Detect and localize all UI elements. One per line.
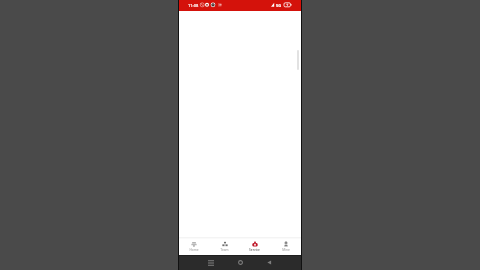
staticText: Mine <box>282 248 290 252</box>
staticText: Team <box>220 248 229 252</box>
staticText: Home <box>189 248 199 252</box>
staticText: 11:08 <box>188 3 199 8</box>
staticText: 5G <box>276 3 282 8</box>
button[interactable]: Team <box>209 238 239 254</box>
button[interactable]: Home <box>179 238 209 254</box>
button[interactable]: Recent apps <box>203 255 219 270</box>
staticText: Service <box>249 248 260 252</box>
button[interactable]: Home <box>232 255 248 270</box>
button[interactable]: Back <box>261 255 277 270</box>
button[interactable]: Service <box>239 238 270 254</box>
button[interactable]: Mine <box>270 238 301 254</box>
